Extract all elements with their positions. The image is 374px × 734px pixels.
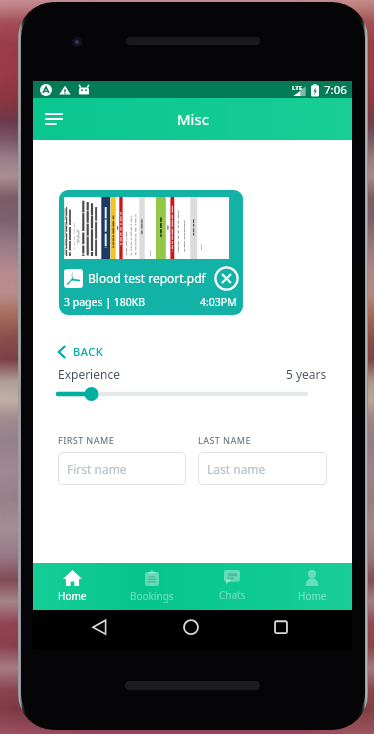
staticText: FIRST NAME xyxy=(58,434,115,446)
button[interactable]: Home xyxy=(33,563,112,610)
button[interactable]: First name xyxy=(58,452,186,485)
staticText: BACK xyxy=(73,344,104,359)
staticText: Bookings xyxy=(130,589,174,603)
staticText: Chats xyxy=(219,588,246,602)
staticText: Misc xyxy=(177,109,209,129)
button[interactable]: Experience slider xyxy=(58,386,306,402)
button[interactable]: BACK xyxy=(57,342,105,361)
staticText: 7:06 xyxy=(324,82,347,98)
staticText: 3 pages | 180KB xyxy=(64,295,146,309)
staticText: 4:03PM xyxy=(200,295,237,309)
staticText: Blood test report.pdf xyxy=(88,270,206,286)
button[interactable]: Remove attachment xyxy=(214,266,239,291)
button[interactable]: Open navigation menu xyxy=(37,104,67,134)
button[interactable]: Last name xyxy=(198,452,327,485)
staticText: Experience xyxy=(58,366,120,382)
staticText: First name xyxy=(67,461,127,477)
staticText: LTE xyxy=(292,84,303,92)
button[interactable]: Blood test report.pdf xyxy=(59,190,243,315)
button[interactable]: Chats xyxy=(192,563,272,610)
staticText: Home xyxy=(298,589,327,603)
staticText: 5 years xyxy=(286,366,327,382)
staticText: LAST NAME xyxy=(198,434,251,446)
button[interactable]: Home xyxy=(272,563,352,610)
staticText: Last name xyxy=(207,461,266,477)
button[interactable]: Bookings xyxy=(112,563,192,610)
staticText: Home xyxy=(58,589,87,603)
